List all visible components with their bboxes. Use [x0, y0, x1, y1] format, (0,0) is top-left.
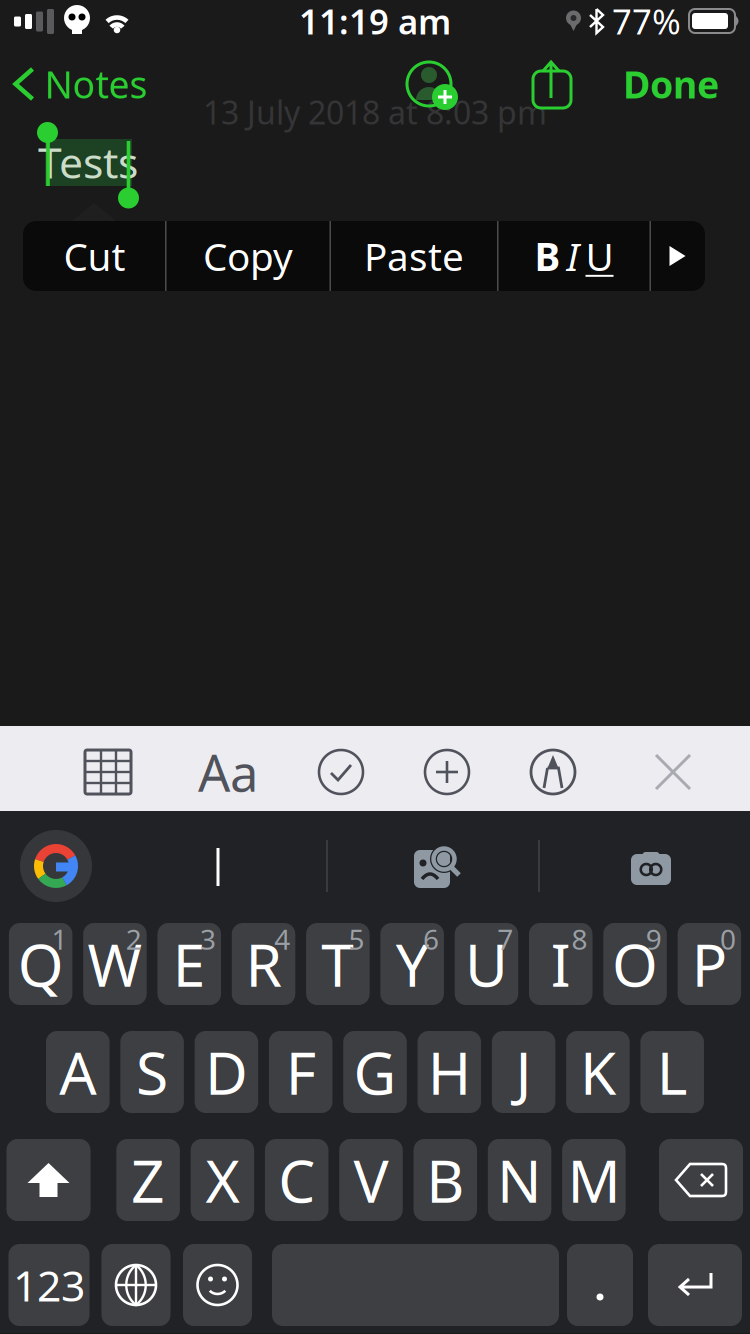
staticText: S	[136, 1033, 168, 1111]
button[interactable]: I	[529, 923, 592, 1005]
staticText: R	[245, 925, 281, 1003]
button[interactable]: S	[120, 1031, 184, 1113]
button[interactable]: Back to Notes	[12, 59, 147, 109]
button[interactable]: Add people	[398, 58, 460, 110]
staticText: Tests	[38, 134, 138, 190]
staticText: I	[566, 230, 579, 282]
staticText: 4	[274, 920, 290, 958]
staticText: C	[278, 1141, 315, 1219]
button[interactable]: Text style	[198, 738, 258, 806]
button[interactable]: U	[455, 923, 518, 1005]
staticText: 9	[646, 920, 662, 958]
staticText: Copy	[203, 230, 293, 282]
button[interactable]: Emoji	[183, 1244, 252, 1326]
staticText: 1	[51, 920, 67, 958]
button[interactable]: Done	[623, 59, 719, 109]
button[interactable]: O	[603, 923, 667, 1005]
button[interactable]: Copy	[166, 221, 329, 291]
button[interactable]: B	[498, 221, 649, 291]
staticText: A	[59, 1033, 96, 1111]
staticText: O	[612, 925, 658, 1003]
staticText: Notes	[44, 59, 147, 109]
staticText: F	[286, 1033, 316, 1111]
button[interactable]: Shift	[6, 1139, 90, 1221]
staticText: 7	[497, 920, 513, 958]
button[interactable]: Paste	[331, 221, 497, 291]
staticText: B	[426, 1141, 464, 1219]
button[interactable]: Switch keyboard	[101, 1244, 170, 1326]
button[interactable]: L	[640, 1031, 704, 1113]
staticText: Done	[623, 59, 719, 109]
button[interactable]: V	[339, 1139, 403, 1221]
button[interactable]: N	[488, 1139, 551, 1221]
button[interactable]: Image search	[414, 844, 460, 888]
staticText: 3	[200, 920, 216, 958]
staticText: Z	[131, 1141, 165, 1219]
staticText: W	[87, 925, 142, 1003]
button[interactable]: Z	[116, 1139, 180, 1221]
button[interactable]: Insert table	[85, 750, 131, 794]
staticText: T	[321, 925, 354, 1003]
button[interactable]: Period	[567, 1244, 633, 1326]
button[interactable]: Insert	[425, 750, 469, 794]
button[interactable]: Markup	[531, 750, 575, 794]
staticText: I	[551, 925, 571, 1003]
staticText: G	[353, 1033, 396, 1111]
button[interactable]: J	[492, 1031, 555, 1113]
button[interactable]: X	[191, 1139, 254, 1221]
staticText: H	[428, 1033, 471, 1111]
staticText: Paste	[364, 230, 464, 282]
button[interactable]: W	[83, 923, 147, 1005]
staticText: X	[205, 1141, 239, 1219]
staticText: U	[585, 230, 613, 282]
staticText: 8	[571, 920, 587, 958]
staticText: N	[497, 1141, 542, 1219]
button[interactable]: Numbers	[8, 1244, 89, 1326]
staticText: 6	[423, 920, 439, 958]
button[interactable]: A	[46, 1031, 110, 1113]
button[interactable]: Google search	[20, 830, 92, 902]
staticText: 2	[126, 920, 142, 958]
staticText: 77%	[612, 0, 681, 44]
staticText: Cut	[63, 230, 125, 282]
button[interactable]: M	[562, 1139, 626, 1221]
button[interactable]: K	[566, 1031, 630, 1113]
button[interactable]: Y	[380, 923, 444, 1005]
staticText: Q	[18, 925, 64, 1003]
staticText: U	[465, 925, 508, 1003]
button[interactable]: Checklist	[319, 750, 363, 794]
button[interactable]: B	[413, 1139, 477, 1221]
staticText: J	[516, 1033, 532, 1111]
button[interactable]: F	[269, 1031, 332, 1113]
staticText: V	[353, 1141, 388, 1219]
staticText: P	[692, 925, 727, 1003]
staticText: Aa	[198, 738, 258, 806]
button[interactable]: D	[195, 1031, 258, 1113]
button[interactable]: Delete	[659, 1139, 743, 1221]
staticText: 123	[13, 1257, 85, 1313]
button[interactable]: Return	[648, 1244, 742, 1326]
button[interactable]: E	[157, 923, 221, 1005]
button[interactable]: Close	[656, 755, 690, 789]
button[interactable]: P	[678, 923, 741, 1005]
staticText: 5	[349, 920, 365, 958]
staticText: B	[534, 230, 560, 282]
button[interactable]: G	[343, 1031, 407, 1113]
staticText: Y	[396, 925, 429, 1003]
staticText: 0	[720, 920, 736, 958]
button[interactable]: Share	[532, 60, 572, 108]
button[interactable]: GIF search	[629, 846, 673, 886]
staticText: K	[580, 1033, 616, 1111]
staticText: 13 July 2018 at 8:03 pm	[203, 91, 547, 133]
button[interactable]: R	[232, 923, 295, 1005]
button[interactable]: T	[306, 923, 370, 1005]
button[interactable]: C	[265, 1139, 328, 1221]
button[interactable]: Cut	[24, 221, 165, 291]
staticText: M	[567, 1141, 620, 1219]
button[interactable]: More	[651, 221, 704, 291]
button[interactable]: H	[418, 1031, 481, 1113]
staticText: 11:19 am	[299, 0, 451, 44]
staticText: E	[173, 925, 206, 1003]
button[interactable]: Q	[9, 923, 72, 1005]
